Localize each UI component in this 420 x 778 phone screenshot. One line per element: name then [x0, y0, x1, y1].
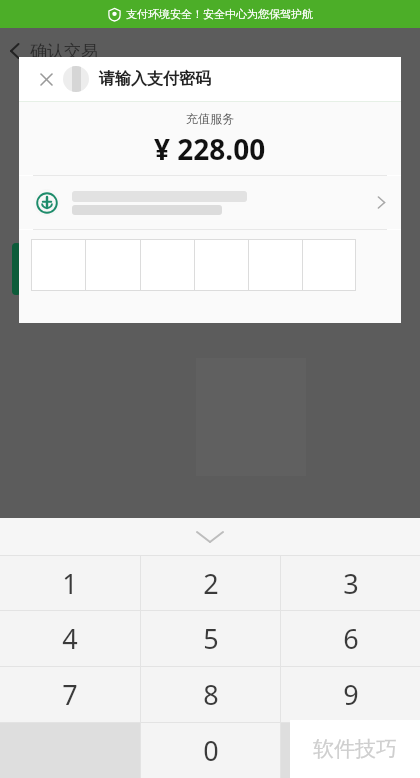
staticText: 4 [62, 620, 78, 657]
button[interactable]: 5 [141, 611, 280, 666]
button[interactable]: 8 [141, 667, 280, 722]
staticText: 2 [203, 565, 219, 602]
staticText: 1 [62, 565, 78, 602]
button[interactable]: Hide keyboard [0, 518, 420, 555]
staticText: 0 [203, 732, 219, 769]
button[interactable]: 3 [281, 556, 420, 610]
staticText: 软件技巧 [313, 736, 397, 762]
button[interactable]: 9 [281, 667, 420, 722]
staticText: 5 [203, 620, 219, 657]
staticText: 8 [203, 676, 219, 713]
button[interactable] [281, 723, 420, 778]
button[interactable]: 0 [141, 723, 280, 778]
staticText: 确认交易 [30, 41, 98, 62]
button[interactable] [31, 239, 356, 291]
staticText: 6 [343, 620, 359, 657]
staticText: 请输入支付密码 [99, 69, 211, 89]
button[interactable]: 7 [0, 667, 140, 722]
button[interactable]: 1 [0, 556, 140, 610]
staticText: 7 [62, 676, 78, 713]
button[interactable]: 6 [281, 611, 420, 666]
button[interactable]: 4 [0, 611, 140, 666]
staticText: 9 [343, 676, 359, 713]
staticText: 充值服务 [186, 111, 234, 126]
staticText: 支付环境安全！安全中心为您保驾护航 [126, 7, 313, 21]
button[interactable]: 2 [141, 556, 280, 610]
button[interactable]: Close [31, 64, 61, 94]
staticText: ¥ 228.00 [154, 130, 266, 168]
button[interactable] [19, 176, 401, 229]
staticText: 3 [343, 565, 359, 602]
